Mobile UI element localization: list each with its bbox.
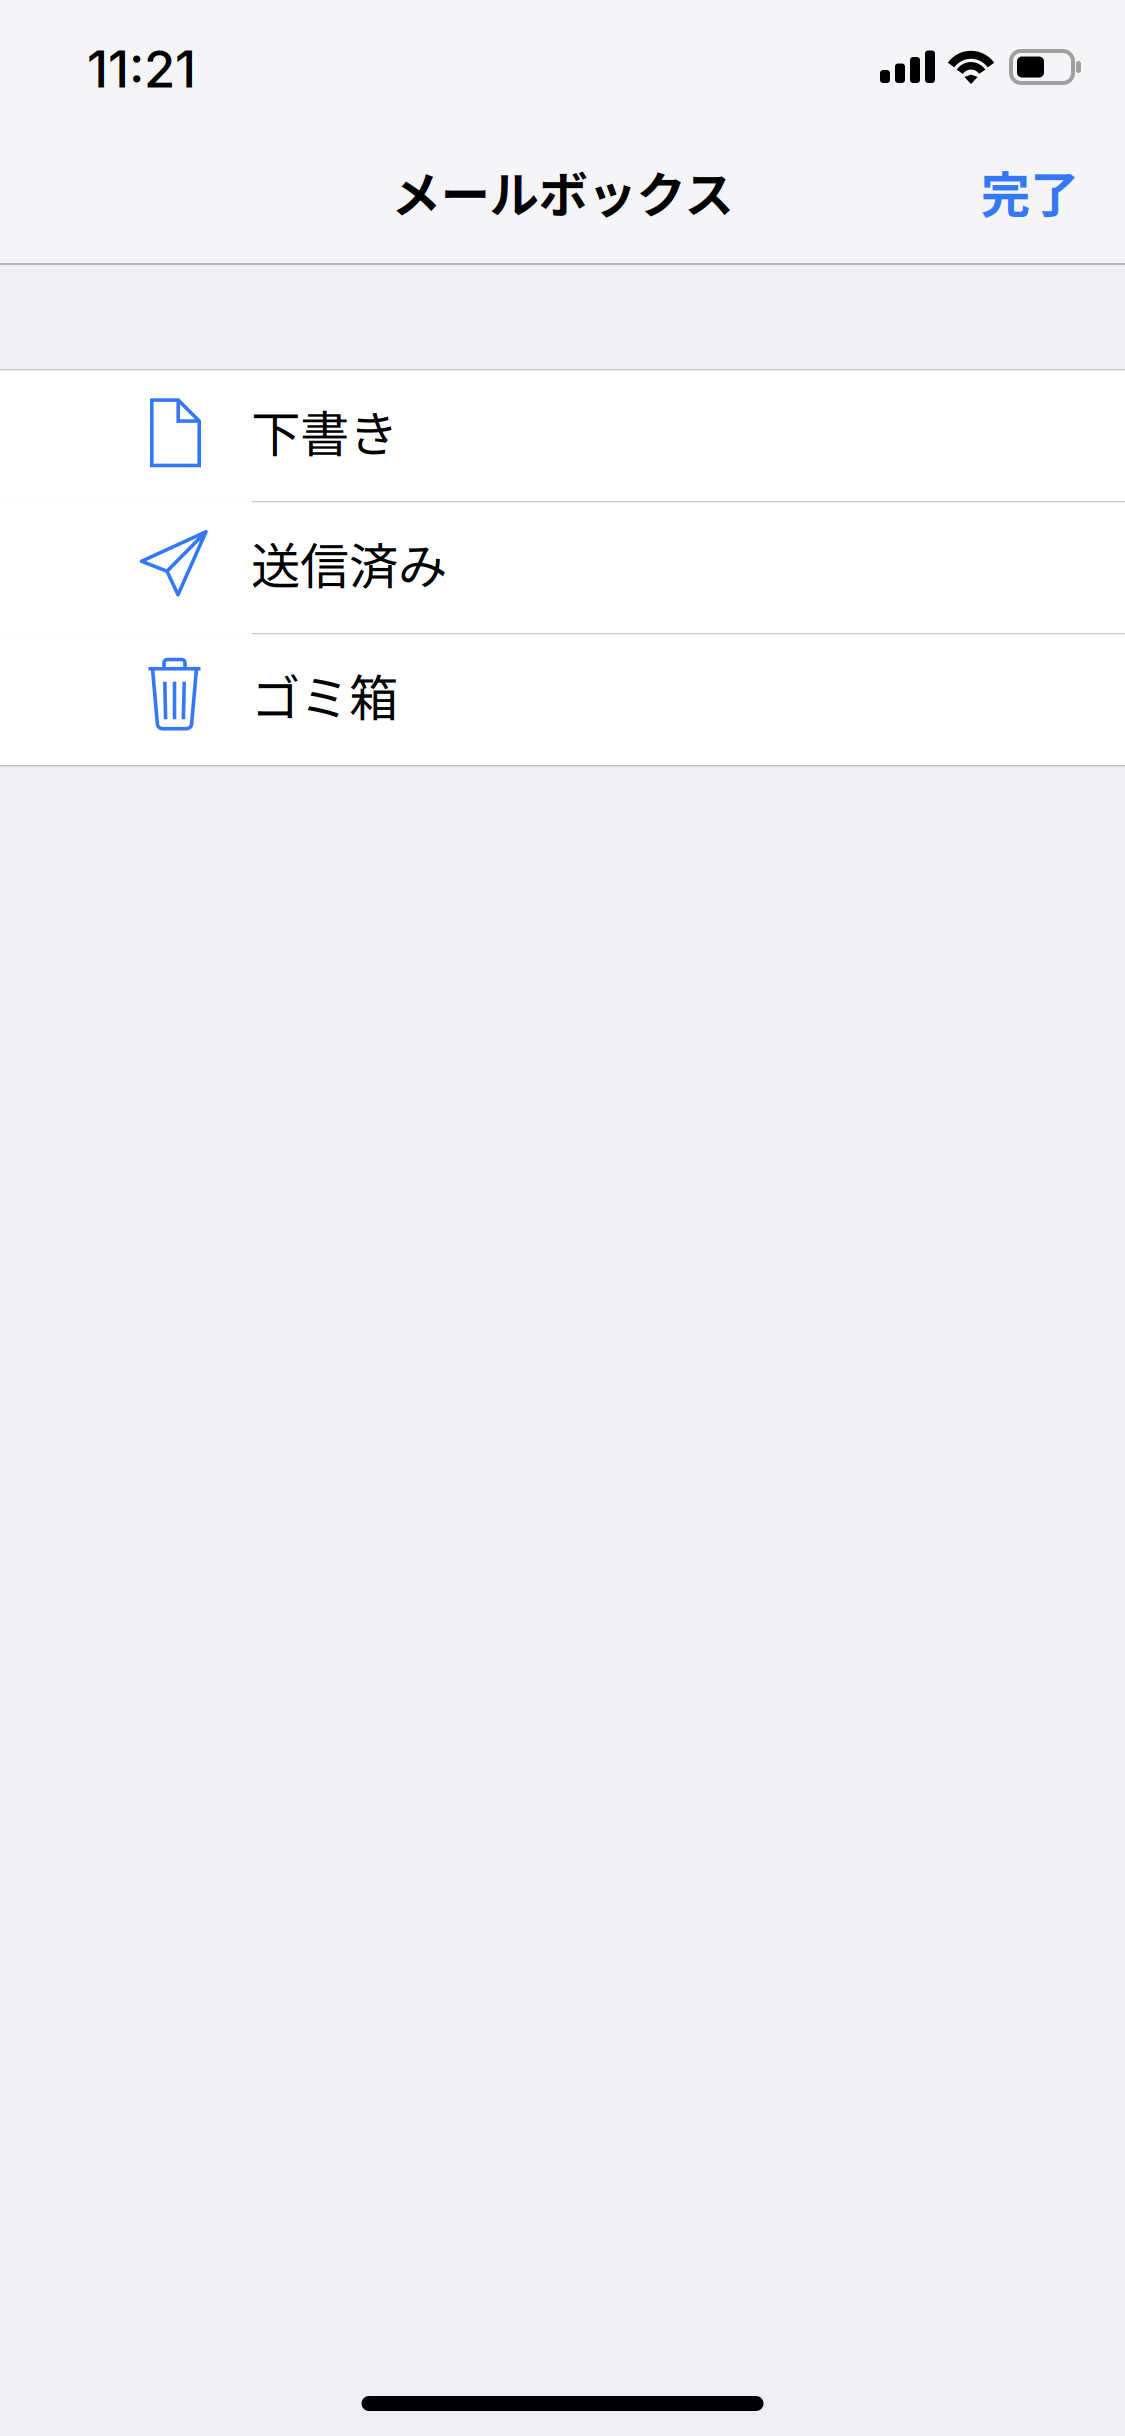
- button[interactable]: 送信済み: [0, 502, 1125, 634]
- button[interactable]: 下書き: [0, 370, 1125, 502]
- staticText: ゴミ箱: [251, 659, 398, 730]
- staticText: メールボックス: [391, 156, 733, 227]
- staticText: 完了: [981, 156, 1079, 227]
- button[interactable]: 完了: [969, 142, 1091, 241]
- staticText: 送信済み: [251, 527, 447, 598]
- button[interactable]: ゴミ箱: [0, 634, 1125, 765]
- staticText: 11:21: [87, 38, 196, 100]
- staticText: 下書き: [251, 395, 398, 466]
